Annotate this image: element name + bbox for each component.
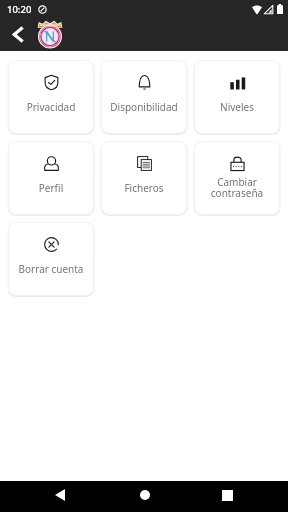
staticText: Disponibilidad	[101, 100, 187, 114]
button[interactable]: Ficheros	[101, 141, 187, 215]
button[interactable]: Borrar cuenta	[8, 222, 94, 296]
button[interactable]: Back	[43, 481, 76, 509]
button[interactable]: Niveles	[194, 60, 280, 134]
staticText: Borrar cuenta	[8, 262, 94, 276]
staticText: 10:20	[7, 3, 32, 16]
button[interactable]: Cambiar contraseña	[194, 141, 280, 215]
button[interactable]: Recent apps	[211, 481, 244, 509]
button[interactable]: Disponibilidad	[101, 60, 187, 134]
button[interactable]: Home	[128, 481, 161, 509]
staticText: Privacidad	[8, 100, 94, 114]
staticText: Ficheros	[101, 181, 187, 195]
button[interactable]: Back	[0, 18, 34, 51]
button[interactable]: Perfil	[8, 141, 94, 215]
button[interactable]: Privacidad	[8, 60, 94, 134]
staticText: Niveles	[194, 100, 280, 114]
staticText: Perfil	[8, 181, 94, 195]
staticText: Cambiar contraseña	[194, 175, 280, 200]
